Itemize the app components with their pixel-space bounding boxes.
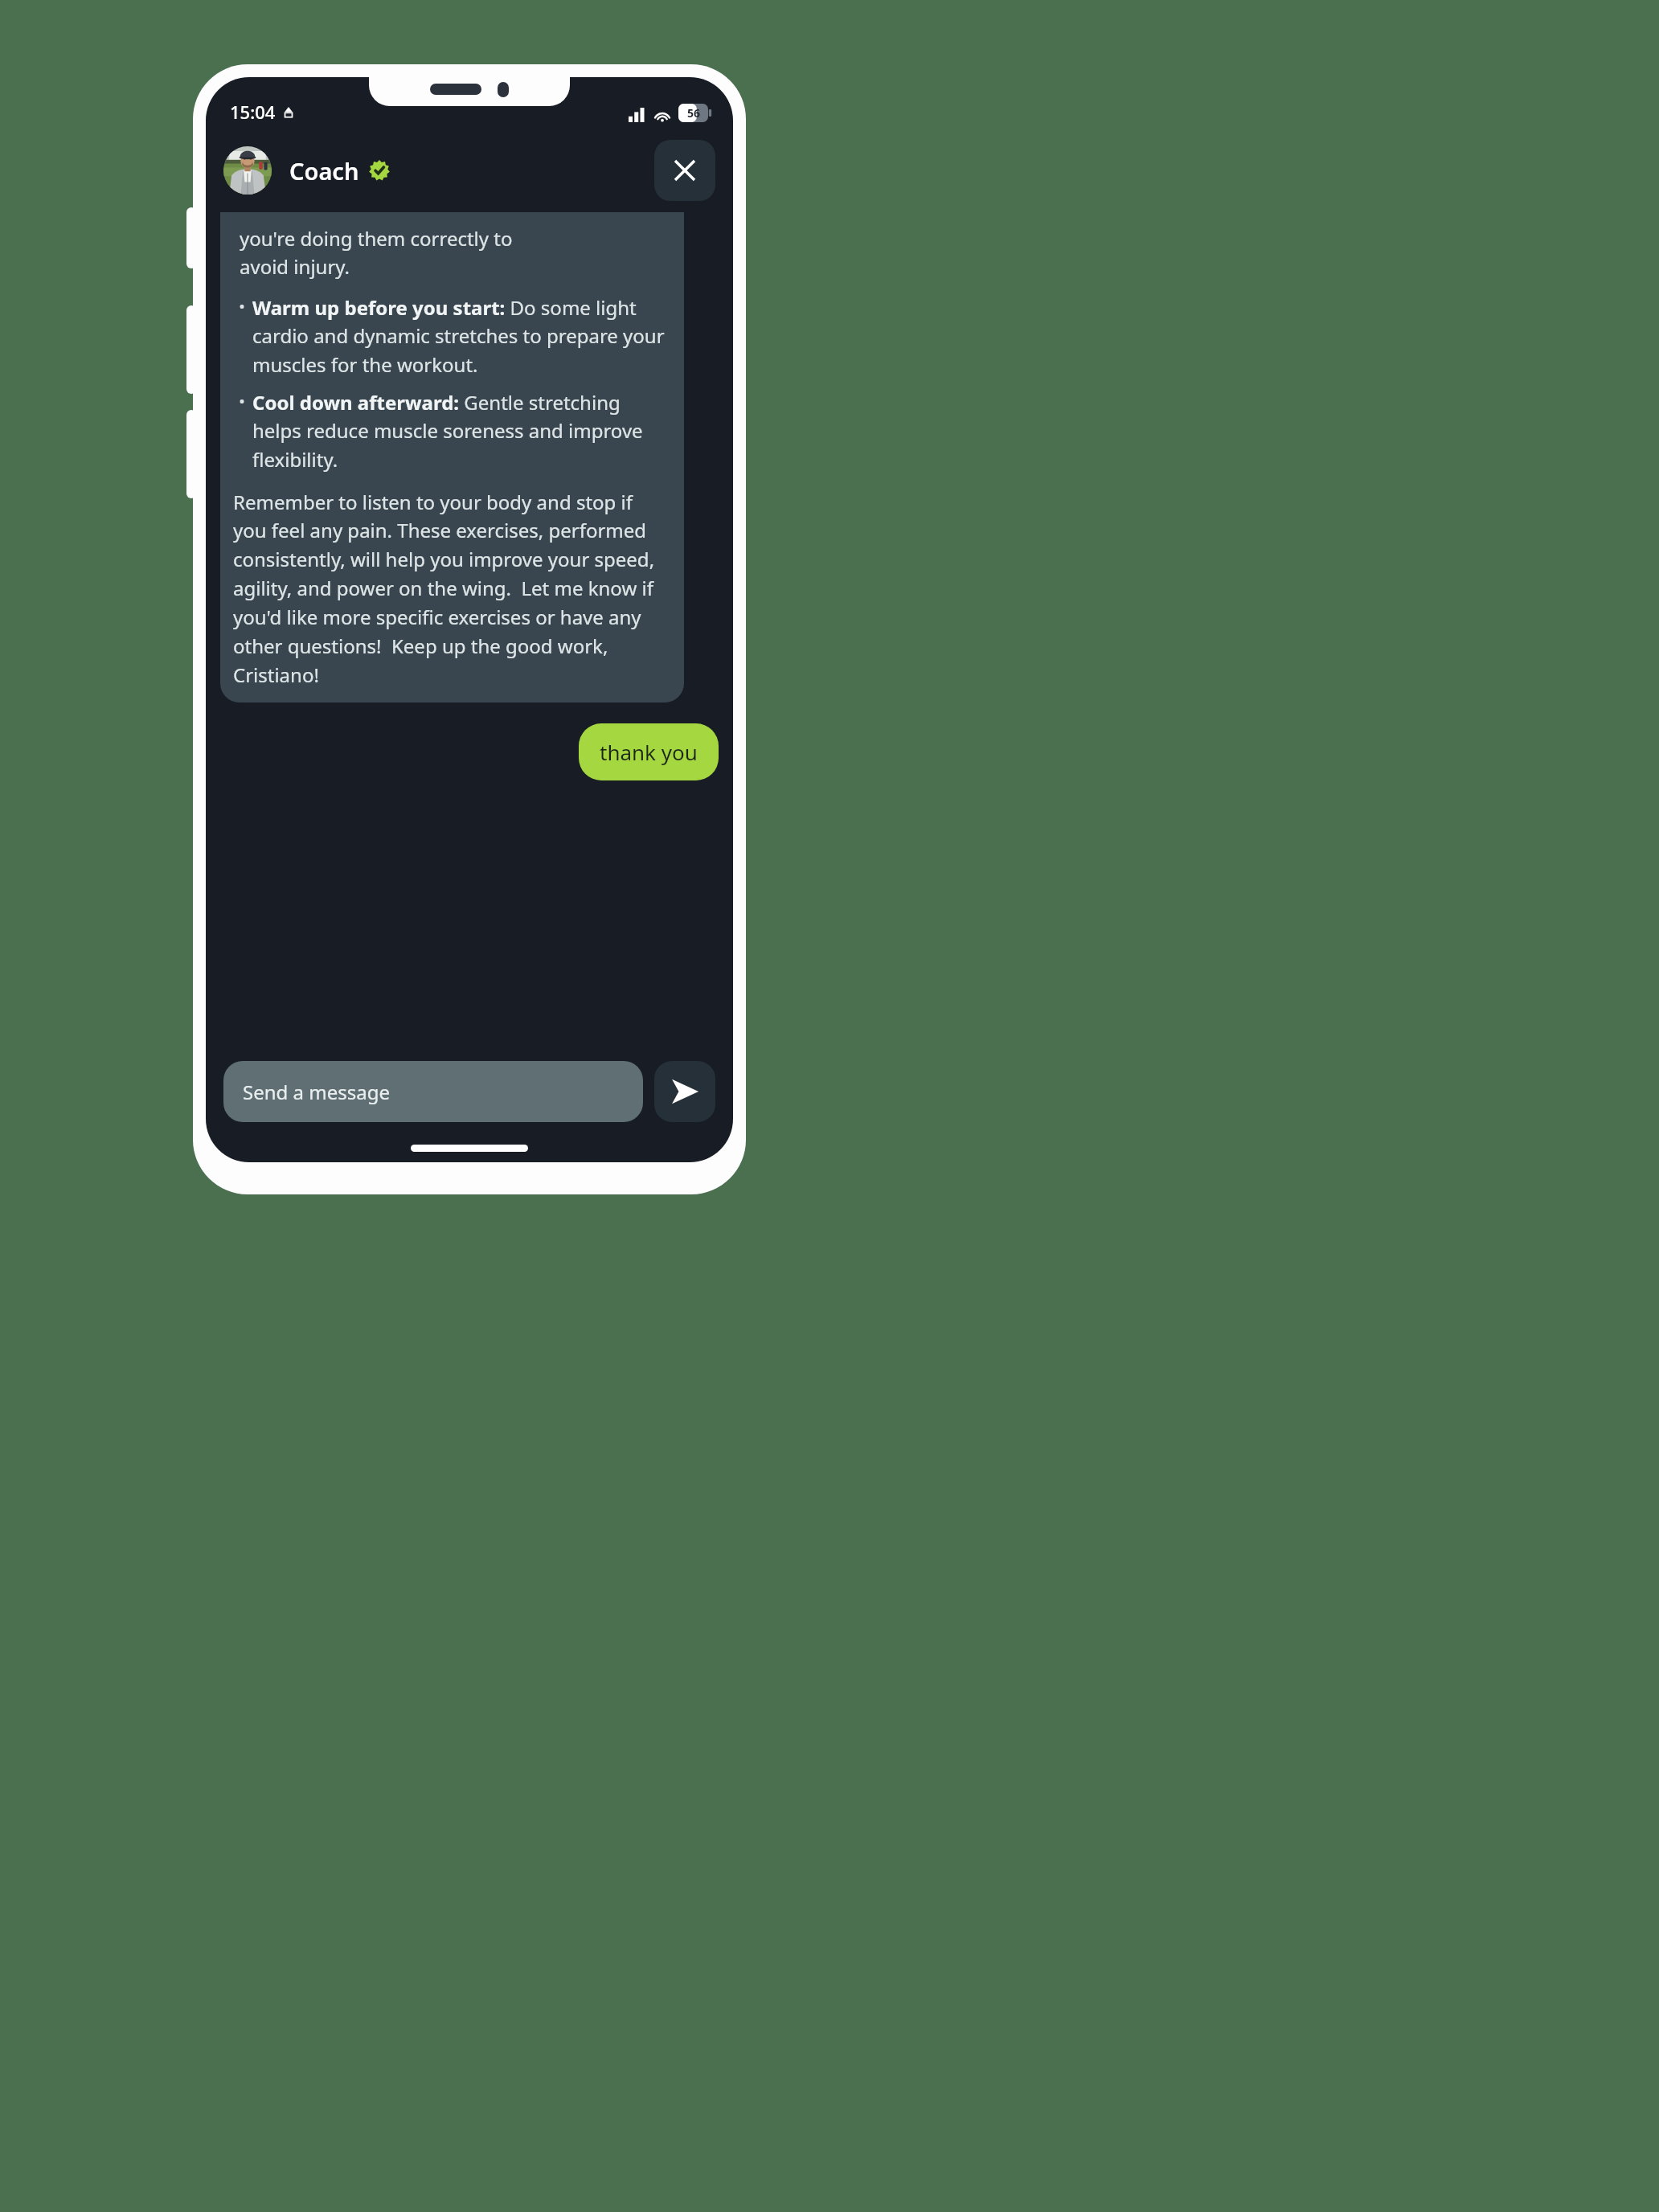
button[interactable]: Send [654,1061,715,1122]
staticText: • [231,391,252,412]
button[interactable]: thank you [579,723,719,780]
staticText: Coach [289,155,359,186]
staticText: Send a message [243,1079,390,1105]
staticText: 56 [687,105,701,121]
button[interactable]: watch videos and make sure [220,212,684,703]
staticText: you're doing them correctly to avoid inj… [240,225,513,280]
button[interactable]: Close [654,140,715,201]
staticText: Remember to listen to your body and stop… [233,489,668,688]
staticText: 15:04 [230,100,276,124]
staticText: Warm up before you start: Do some light … [252,294,673,378]
staticText: thank you [600,738,698,766]
button[interactable]: Send a message [223,1061,643,1122]
staticText: Cool down afterward: Gentle stretching h… [252,389,673,473]
staticText: • [231,296,252,317]
